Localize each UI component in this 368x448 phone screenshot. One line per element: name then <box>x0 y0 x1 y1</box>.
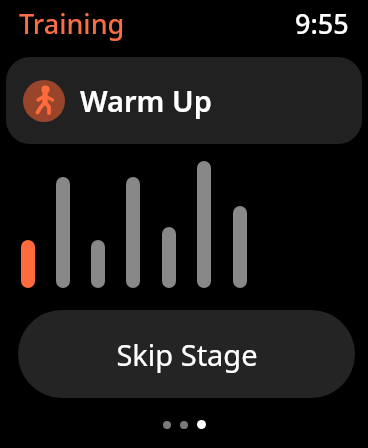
staticText: Training <box>19 5 125 42</box>
other: Stage progress chart <box>15 155 255 295</box>
staticText: 9:55 <box>295 5 349 42</box>
staticText: Skip Stage <box>116 335 258 374</box>
button[interactable]: Warm Up <box>6 57 362 144</box>
staticText: Warm Up <box>80 81 212 120</box>
button[interactable]: Skip Stage <box>18 310 355 398</box>
